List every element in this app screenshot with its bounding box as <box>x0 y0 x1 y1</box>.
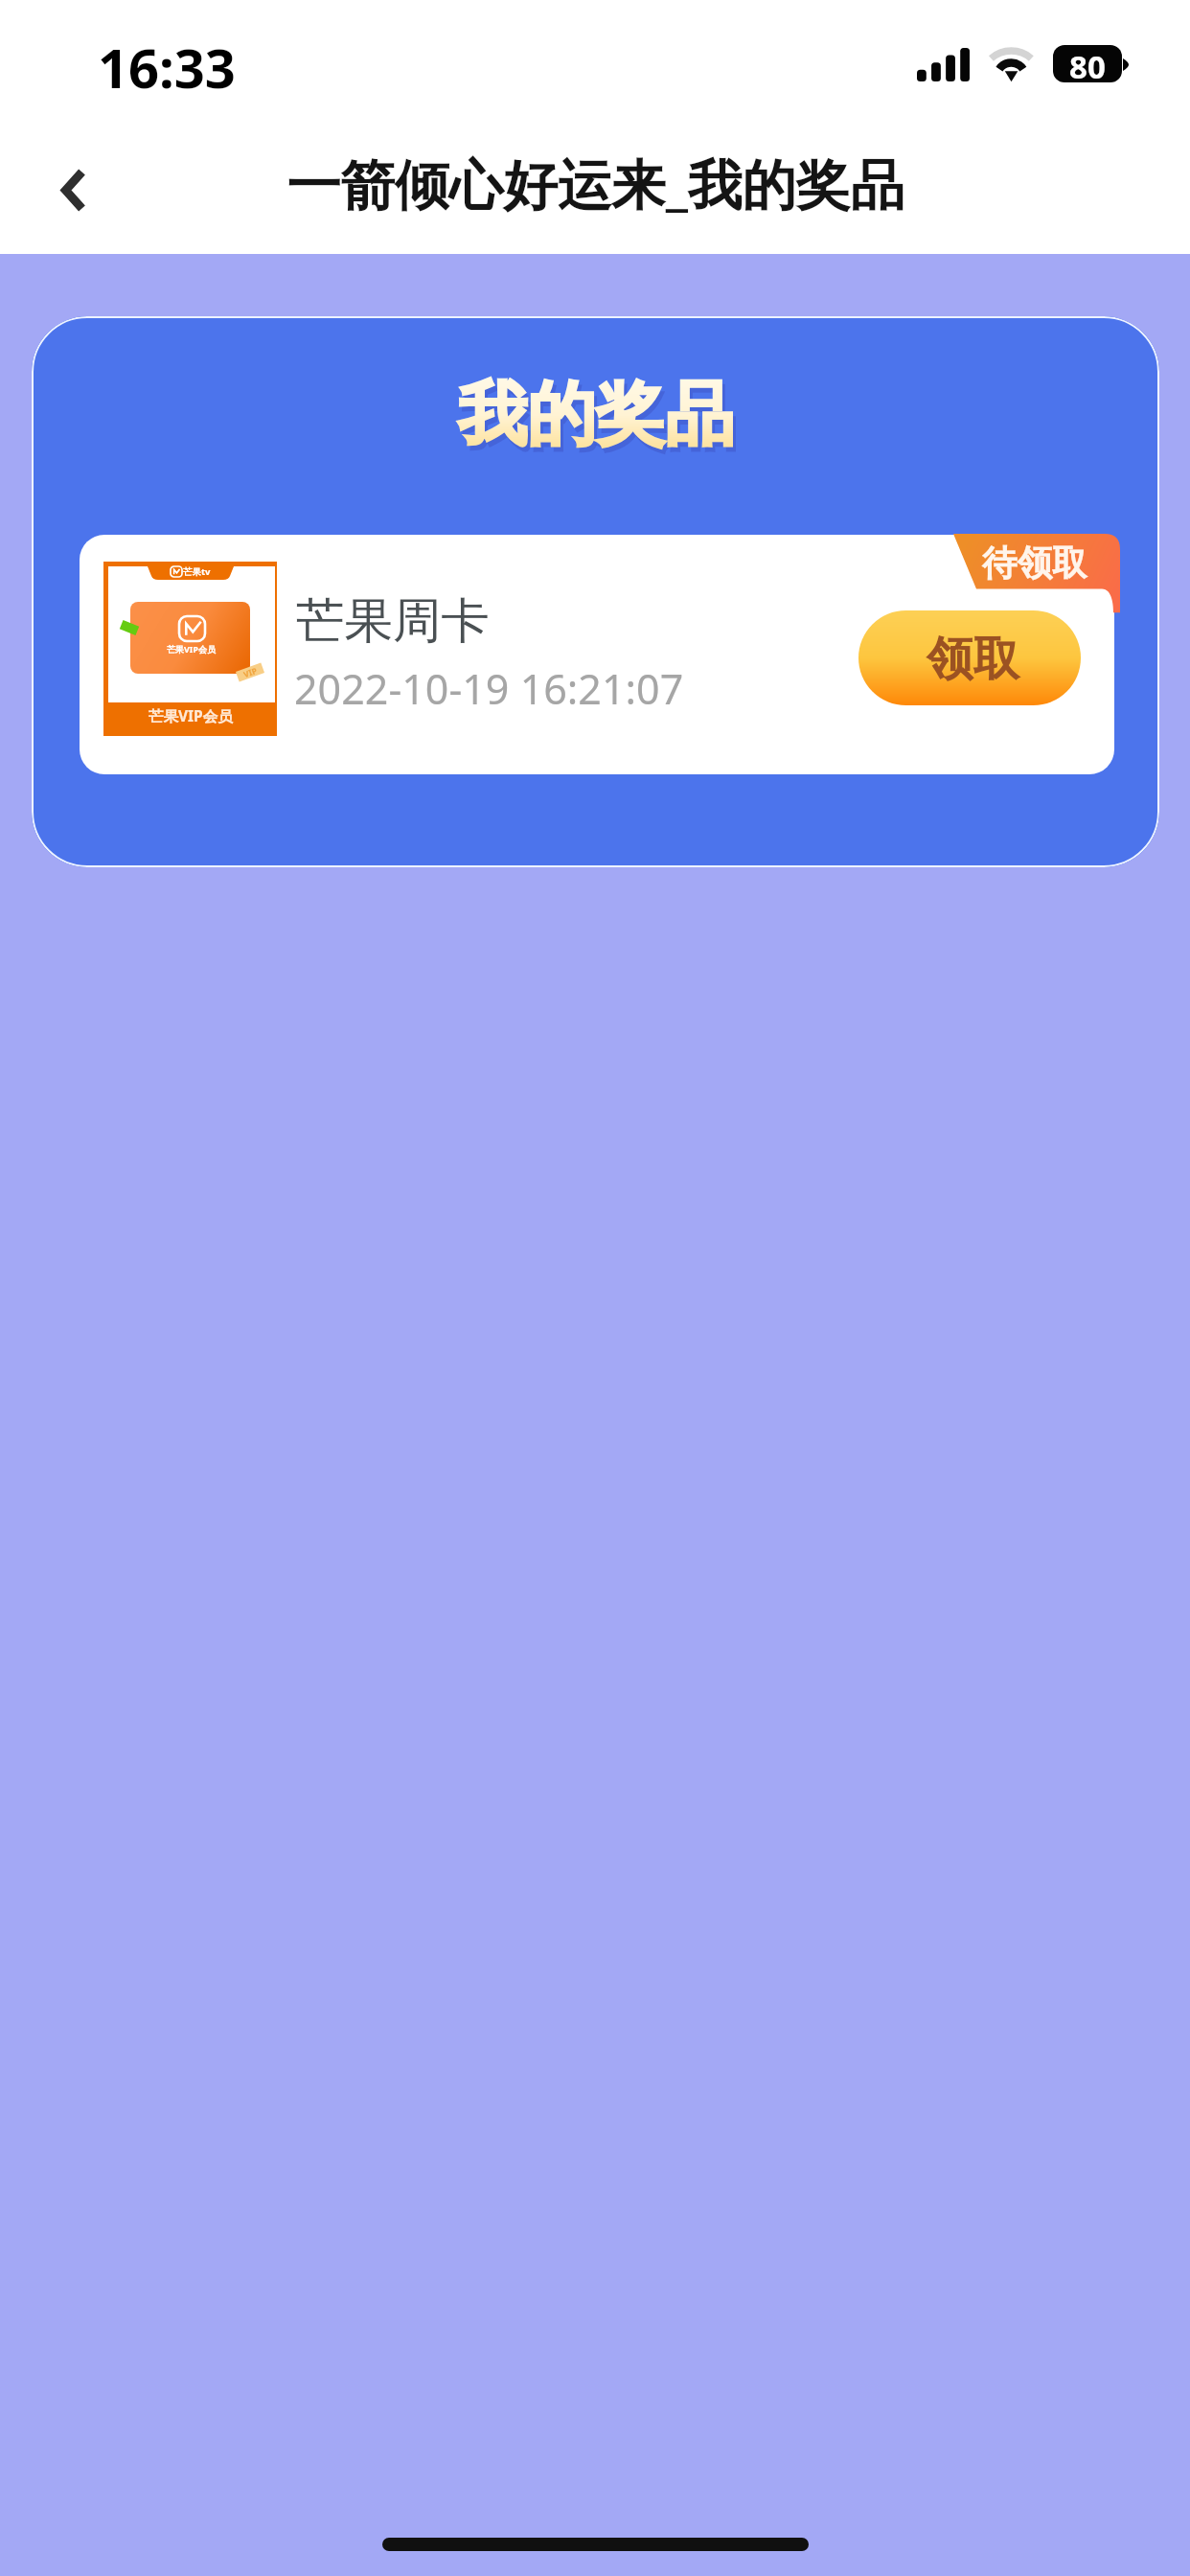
staticText: 2022-10-19 16:21:07 <box>294 660 684 717</box>
staticText: 待领取 <box>982 541 1087 586</box>
staticText: 我的奖品 <box>461 377 737 464</box>
button[interactable]: 芒果tv <box>80 535 1114 774</box>
staticText: 芒果周卡 <box>296 590 490 652</box>
button[interactable]: Back <box>17 132 132 247</box>
button[interactable]: 领取 <box>858 610 1081 705</box>
staticText: 芒果VIP会员 <box>167 643 216 655</box>
staticText: 芒果VIP会员 <box>149 705 233 725</box>
staticText: 80 <box>1069 45 1106 82</box>
staticText: 我的奖品 <box>458 372 734 459</box>
staticText: 16:33 <box>98 31 236 103</box>
staticText: 一箭倾心好运来_我的奖品 <box>286 147 904 220</box>
staticText: VIP <box>242 665 259 680</box>
staticText: 领取 <box>927 630 1019 688</box>
staticText: 芒果tv <box>183 565 211 578</box>
